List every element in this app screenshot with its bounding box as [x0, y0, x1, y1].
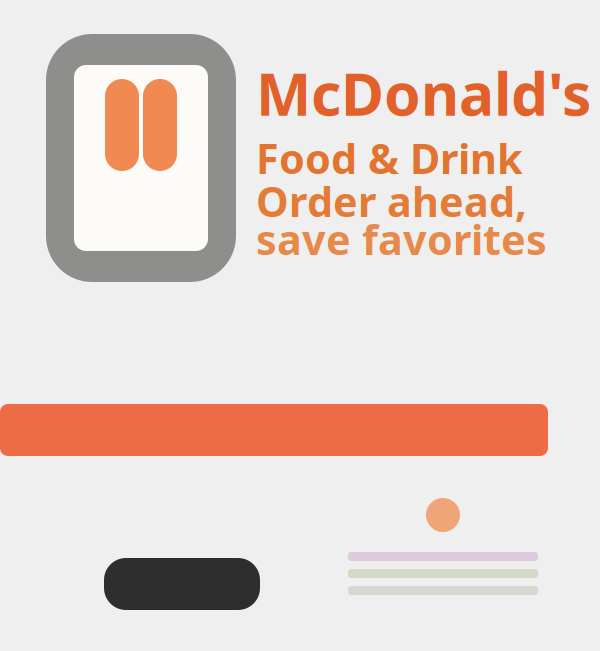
- staticText: save favorites: [256, 212, 547, 266]
- button[interactable]: Order now: [0, 404, 548, 456]
- staticText: McDonald's: [256, 54, 591, 132]
- staticText: Food & Drink: [256, 131, 523, 185]
- staticText: Order ahead,: [256, 174, 527, 228]
